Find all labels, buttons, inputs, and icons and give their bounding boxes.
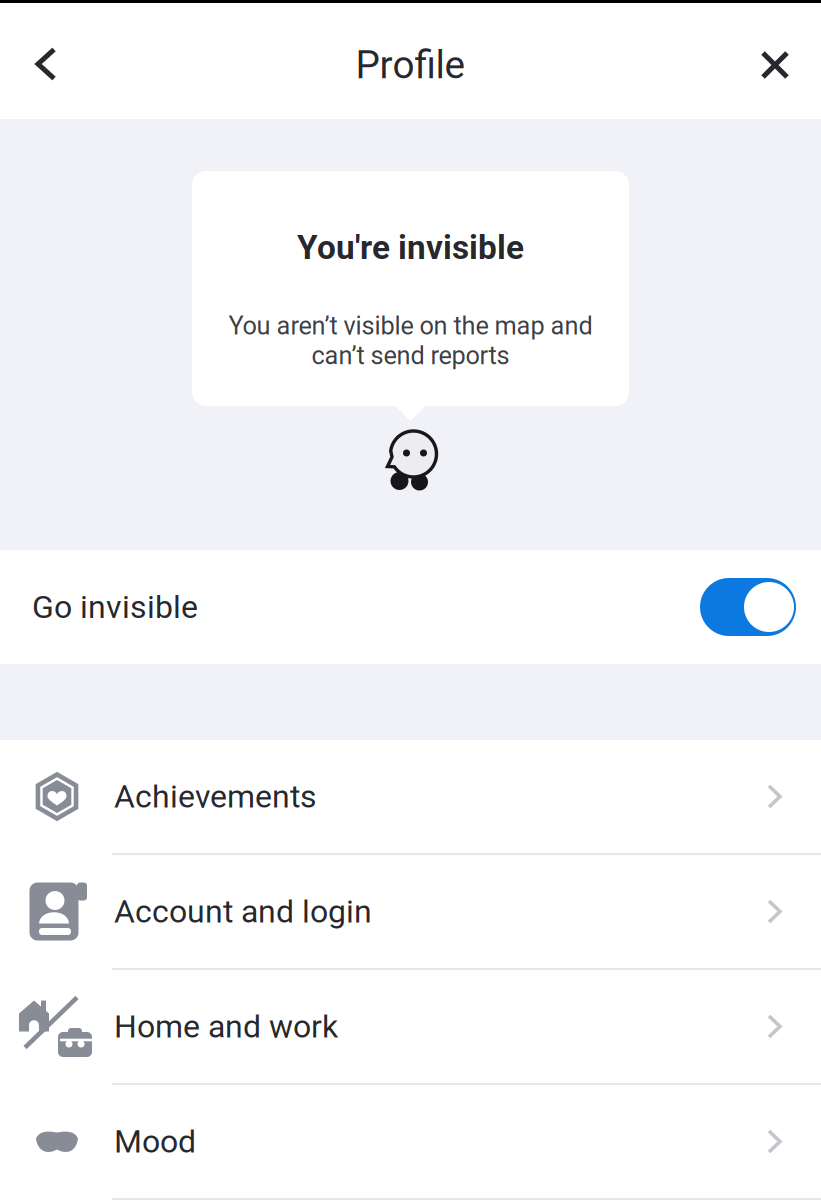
staticText: You aren’t visible on the map and xyxy=(228,311,592,341)
staticText: Mood xyxy=(114,1123,196,1160)
button[interactable]: Close xyxy=(729,0,821,123)
button[interactable]: Account and login xyxy=(0,855,821,970)
staticText: You're invisible xyxy=(297,228,524,267)
staticText: Go invisible xyxy=(32,588,198,626)
button[interactable]: Achievements xyxy=(0,740,821,855)
button[interactable]: Go invisible xyxy=(0,550,821,664)
staticText: Achievements xyxy=(114,778,317,815)
staticText: Account and login xyxy=(114,893,372,930)
button[interactable]: Mood xyxy=(0,1085,821,1200)
button[interactable]: Back xyxy=(0,0,92,122)
button[interactable]: Home and work xyxy=(0,970,821,1085)
staticText: Home and work xyxy=(114,1008,338,1045)
staticText: Profile xyxy=(355,42,465,88)
staticText: can’t send reports xyxy=(311,341,509,370)
